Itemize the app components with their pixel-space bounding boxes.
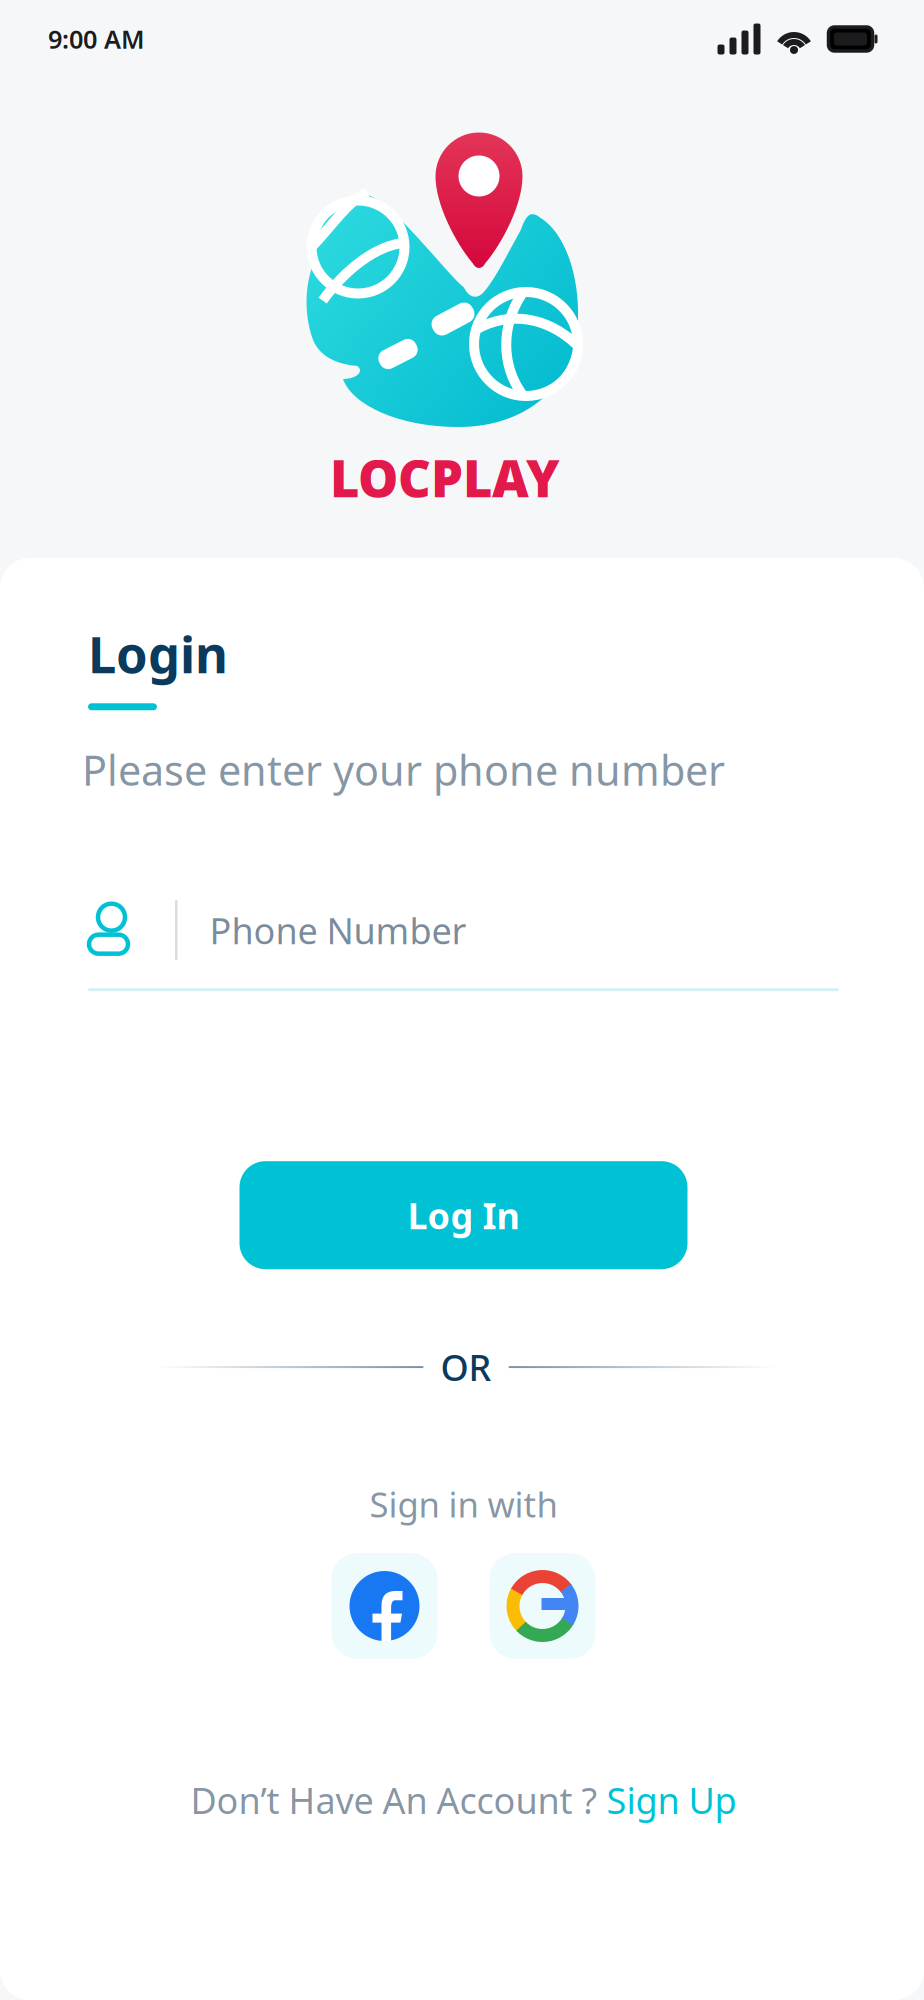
button[interactable]: Sign in with Facebook xyxy=(331,1553,437,1659)
staticText: Log In xyxy=(407,1191,519,1239)
button[interactable]: Sign in with Google xyxy=(489,1553,595,1659)
staticText: Phone Number xyxy=(209,906,466,954)
staticText: Please enter your phone number xyxy=(82,742,725,797)
staticText: LOCPLAY xyxy=(330,444,560,511)
button[interactable]: Log In xyxy=(239,1161,687,1269)
button[interactable]: Don’t Have An Account ? xyxy=(88,1776,839,1824)
staticText: Login xyxy=(88,620,228,687)
staticText: Sign Up xyxy=(606,1776,736,1824)
staticText: 9:00 AM xyxy=(48,22,145,56)
staticText: OR xyxy=(440,1343,491,1391)
staticText: Sign in with xyxy=(369,1481,557,1527)
staticText: Don’t Have An Account ? xyxy=(190,1776,606,1824)
